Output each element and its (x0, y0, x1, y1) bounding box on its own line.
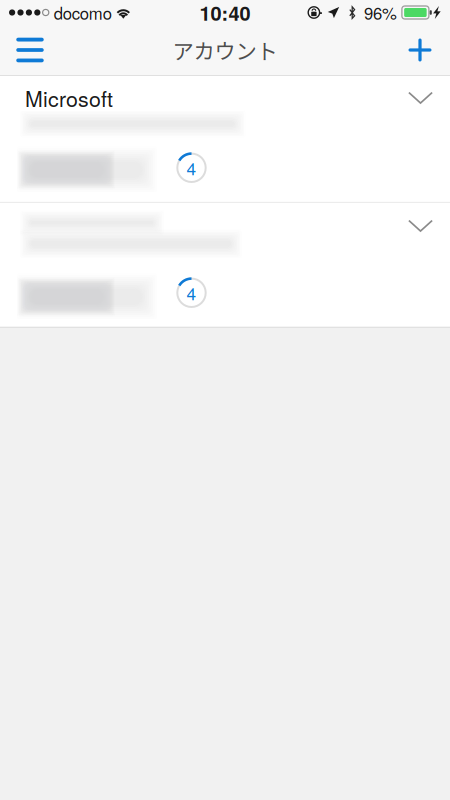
button[interactable]: 4 unread (176, 153, 206, 183)
staticText: アカウント (172, 35, 277, 65)
staticText: 96% (364, 1, 397, 24)
staticText: 4 (186, 155, 196, 180)
button[interactable]: 4 unread (176, 278, 206, 308)
button[interactable]: Collapse account (0, 209, 450, 243)
staticText: docomo (54, 1, 112, 24)
button[interactable]: Add account (390, 25, 450, 75)
staticText: 10:40 (199, 0, 250, 27)
staticText: 4 (186, 280, 196, 305)
button[interactable]: Microsoft (0, 79, 450, 117)
staticText: Microsoft (25, 82, 113, 113)
button[interactable]: Menu (0, 25, 60, 75)
